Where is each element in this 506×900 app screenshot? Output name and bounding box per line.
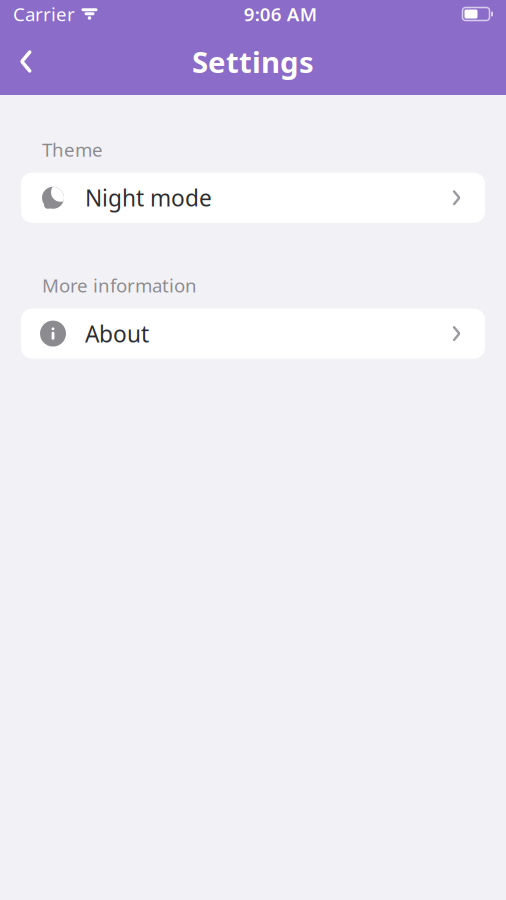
staticText: Night mode	[85, 183, 212, 213]
staticText: 9:06 AM	[244, 2, 317, 26]
button[interactable]: Back	[0, 35, 52, 87]
staticText: Carrier	[13, 2, 75, 26]
staticText: Theme	[42, 137, 103, 162]
button[interactable]: About	[21, 309, 485, 359]
staticText: About	[85, 318, 149, 349]
staticText: Settings	[192, 42, 314, 81]
button[interactable]: Night mode	[21, 173, 485, 223]
staticText: More information	[42, 273, 197, 298]
